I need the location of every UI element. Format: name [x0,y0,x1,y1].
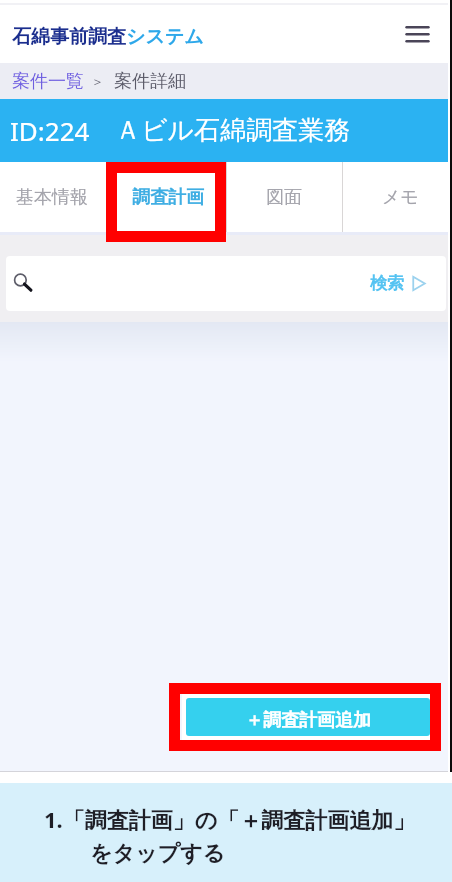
staticText: 図面 [266,186,302,209]
staticText: をタップする [90,840,226,868]
staticText: 案件詳細 [114,70,186,93]
button[interactable]: ＋調査計画追加 [186,698,430,736]
button[interactable]: メモ [342,162,452,232]
staticText: 調査計画 [132,186,204,209]
staticText: 基本情報 [16,186,88,209]
staticText: Ａビル石綿調査業務 [115,114,351,147]
button[interactable]: 検索 [370,273,426,294]
staticText: 検索 [370,273,404,294]
staticText: ＞ [91,73,104,89]
staticText: ＋調査計画追加 [245,709,371,732]
staticText: 案件一覧 [12,70,84,93]
button[interactable]: Search [13,273,35,295]
staticText: 1.「調査計画」の「＋調査計画追加」 [44,804,416,834]
staticText: メモ [382,186,419,209]
button[interactable]: 基本情報 [0,162,110,232]
button[interactable]: Menu [397,14,437,54]
button[interactable]: 調査計画 [110,162,226,232]
button[interactable]: 図面 [226,162,342,232]
staticText: 石綿事前調査システム [12,25,204,49]
staticText: ID:224 [10,113,90,148]
button[interactable]: 案件一覧 [12,70,84,93]
